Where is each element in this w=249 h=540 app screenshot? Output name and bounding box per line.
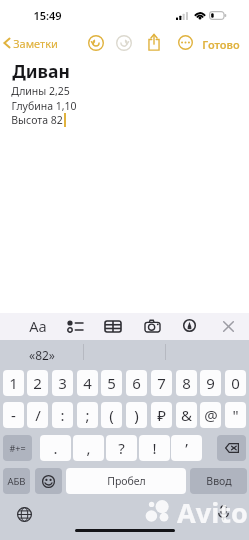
staticText: ; (85, 405, 90, 425)
button[interactable]: 7 (151, 370, 172, 396)
staticText: ( (109, 405, 114, 425)
button[interactable]: & (176, 402, 197, 428)
button[interactable]: 8 (176, 370, 197, 396)
button[interactable]: 4 (77, 370, 98, 396)
button[interactable]: / (27, 402, 48, 428)
staticText: , (86, 438, 91, 458)
staticText: АБВ (7, 475, 26, 488)
staticText: 8 (182, 373, 191, 393)
staticText: " (232, 405, 239, 425)
staticText: 5 (107, 373, 116, 393)
button[interactable]: ? (106, 435, 137, 461)
staticText: @ (204, 405, 218, 425)
button[interactable]: Dictation (217, 505, 230, 521)
staticText: 2 (33, 373, 42, 393)
button[interactable]: " (225, 402, 246, 428)
staticText: Высота 82 (11, 113, 63, 127)
staticText: 1 (9, 373, 18, 393)
button[interactable] (35, 468, 62, 494)
button[interactable]: ₽ (151, 402, 172, 428)
staticText: Глубина 1,10 (11, 99, 77, 113)
staticText: 6 (132, 373, 141, 393)
staticText: 0 (231, 373, 240, 393)
button[interactable]: Ввод (190, 468, 247, 494)
button[interactable]: 6 (126, 370, 147, 396)
button[interactable]: 9 (200, 370, 221, 396)
button[interactable]: Camera (145, 320, 160, 332)
button[interactable]: - (3, 402, 24, 428)
staticText: . (53, 438, 58, 458)
staticText: - (11, 405, 16, 425)
staticText: ) (134, 405, 139, 425)
button[interactable]: Switch keyboard (17, 507, 32, 522)
staticText: ’ (185, 438, 188, 458)
button[interactable]: Checklist (67, 320, 83, 333)
button[interactable]: ! (139, 435, 170, 461)
staticText: Ввод (206, 474, 232, 488)
button[interactable]: ) (126, 402, 147, 428)
staticText: #+= (9, 442, 26, 454)
button[interactable]: ( (101, 402, 122, 428)
staticText: 3 (58, 373, 67, 393)
button[interactable]: : (52, 402, 73, 428)
staticText: Заметки (13, 36, 58, 51)
button[interactable]: Redo (116, 35, 132, 51)
button[interactable]: «82» (29, 347, 55, 363)
staticText: & (181, 405, 192, 425)
staticText: 4 (83, 373, 92, 393)
button[interactable]: More (178, 35, 193, 50)
staticText: : (60, 405, 65, 425)
staticText: 9 (206, 373, 215, 393)
button[interactable]: . (40, 435, 71, 461)
button[interactable]: Table (105, 321, 121, 332)
button[interactable]: Close (221, 319, 236, 334)
staticText: 7 (157, 373, 166, 393)
button[interactable]: Markup (183, 319, 196, 332)
staticText: 15:49 (33, 8, 62, 23)
button[interactable]: 0 (225, 370, 246, 396)
button[interactable]: Undo (88, 35, 104, 51)
staticText: ₽ (157, 405, 166, 425)
staticText: / (35, 405, 41, 425)
button[interactable]: @ (200, 402, 221, 428)
button[interactable]: 5 (101, 370, 122, 396)
staticText: ? (118, 438, 125, 458)
staticText: Пробел (107, 474, 146, 488)
staticText: Длины 2,25 (11, 84, 70, 98)
button[interactable]: 3 (52, 370, 73, 396)
button[interactable]: 1 (3, 370, 24, 396)
button[interactable]: Заметки (1, 30, 60, 56)
button[interactable]: ; (77, 402, 98, 428)
button[interactable]: #+= (3, 435, 32, 461)
button[interactable]: 2 (27, 370, 48, 396)
staticText: Avito (177, 494, 248, 531)
staticText: ! (152, 438, 157, 458)
button[interactable]: ’ (171, 435, 202, 461)
button[interactable]: Пробел (66, 468, 186, 494)
staticText: Диван (12, 59, 70, 83)
button[interactable]: Share (147, 33, 161, 51)
button[interactable]: Готово (202, 37, 240, 52)
button[interactable]: , (73, 435, 104, 461)
button[interactable]: Aa (29, 316, 47, 336)
button[interactable]: АБВ (3, 468, 30, 494)
button[interactable] (217, 435, 246, 461)
